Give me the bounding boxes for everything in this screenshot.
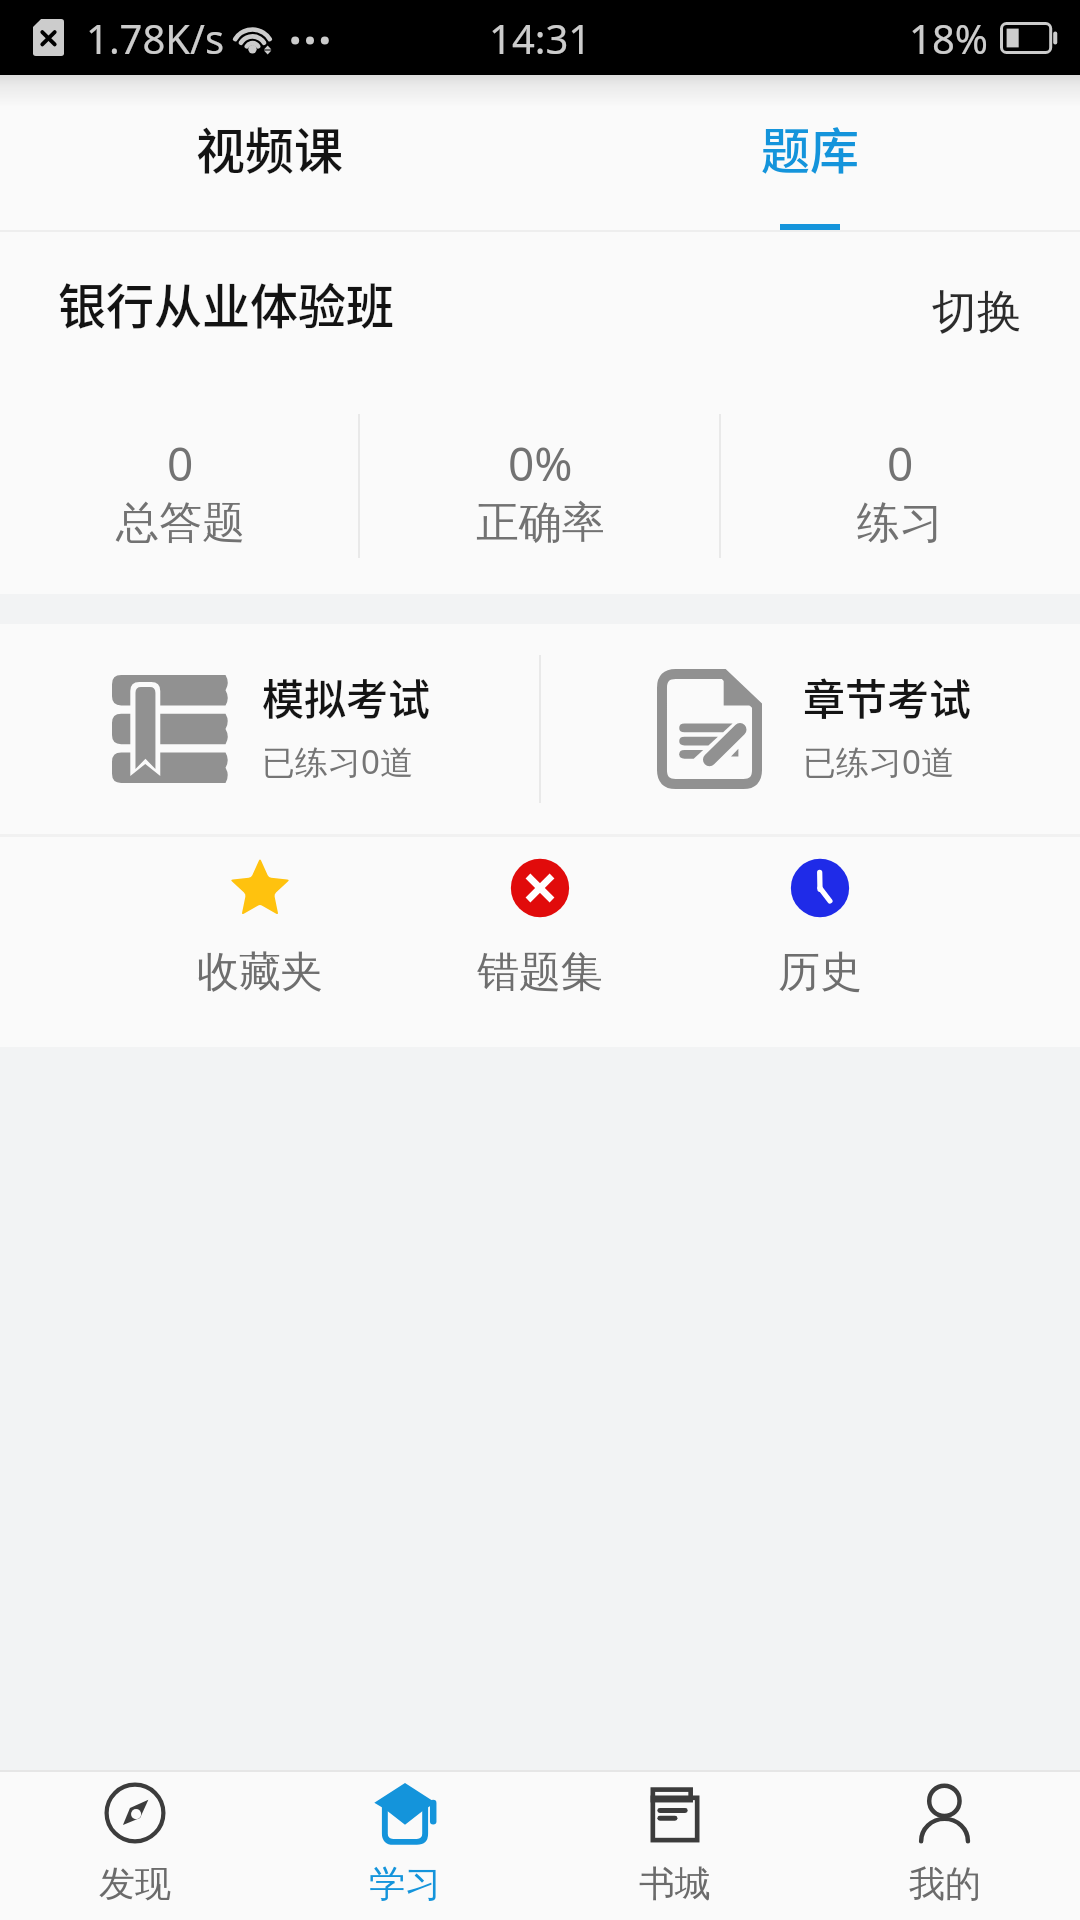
button[interactable]: 切换 — [884, 260, 1080, 365]
staticText: 总答题 — [116, 496, 245, 550]
staticText: 0% — [508, 432, 573, 495]
button[interactable]: Profile — [810, 1772, 1080, 1920]
button[interactable]: Bookstore — [540, 1772, 810, 1920]
button[interactable]: Discover — [0, 1772, 270, 1920]
staticText: 14:31 — [489, 11, 592, 65]
staticText: 1.78K/s — [86, 11, 225, 65]
staticText: 0 — [167, 432, 194, 495]
staticText: 历史 — [778, 946, 862, 999]
staticText: 收藏夹 — [197, 946, 323, 999]
button[interactable]: 视频课 — [0, 75, 540, 232]
button[interactable]: 0 — [0, 386, 360, 594]
staticText: 书城 — [639, 1861, 711, 1906]
staticText: 学习 — [369, 1861, 441, 1906]
staticText: 模拟考试 — [262, 666, 431, 727]
button[interactable]: 0 — [720, 386, 1080, 594]
staticText: 章节考试 — [803, 666, 972, 727]
staticText: 错题集 — [477, 946, 603, 999]
staticText: 已练习0道 — [803, 739, 954, 784]
staticText: 18% — [909, 11, 988, 65]
button[interactable]: 题库 — [540, 75, 1080, 232]
staticText: 切换 — [932, 284, 1022, 341]
button[interactable]: 章节考试 — [540, 624, 1080, 834]
button[interactable]: 错题集 — [400, 837, 680, 1047]
button[interactable]: 0% — [360, 386, 720, 594]
staticText: 题库 — [761, 112, 860, 183]
button[interactable]: 模拟考试 — [0, 624, 540, 834]
staticText: 发现 — [99, 1861, 171, 1906]
staticText: 银行从业体验班 — [58, 268, 395, 338]
staticText: 练习 — [857, 496, 943, 550]
button[interactable]: 历史 — [680, 837, 960, 1047]
staticText: 0 — [887, 432, 914, 495]
staticText: 已练习0道 — [262, 739, 413, 784]
button[interactable]: Study — [270, 1772, 540, 1920]
staticText: 视频课 — [196, 112, 344, 183]
button[interactable]: 收藏夹 — [120, 837, 400, 1047]
staticText: 正确率 — [476, 496, 605, 550]
staticText: 我的 — [909, 1861, 981, 1906]
